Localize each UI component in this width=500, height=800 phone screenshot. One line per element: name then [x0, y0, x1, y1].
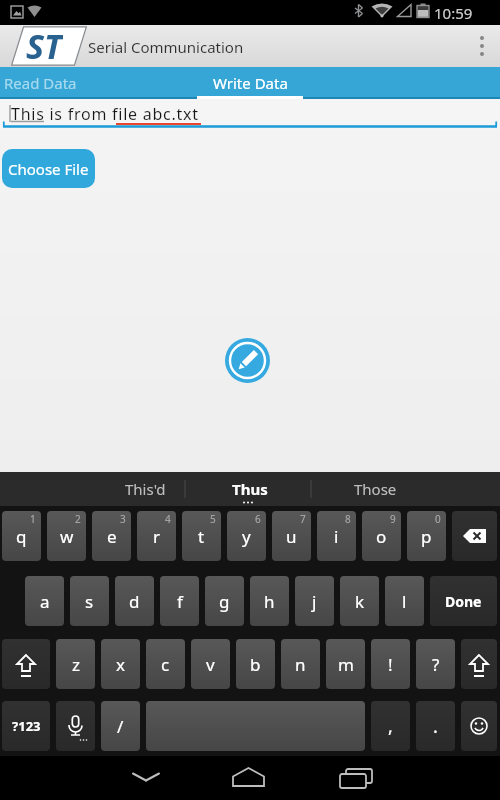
button[interactable]: m [326, 639, 365, 689]
button[interactable]: y [227, 511, 266, 561]
staticText: Done [445, 592, 482, 611]
staticText: 3 [120, 512, 126, 526]
button[interactable] [116, 756, 176, 800]
staticText: j [312, 590, 317, 613]
button[interactable] [327, 756, 387, 800]
button[interactable]: r [137, 511, 176, 561]
button[interactable]: ?123 [2, 701, 50, 751]
staticText: Those [354, 479, 397, 499]
staticText: l [402, 590, 407, 613]
staticText: 2 [75, 512, 81, 526]
button[interactable]: Done [430, 576, 497, 626]
button[interactable]: x [101, 639, 140, 689]
button[interactable]: b [236, 639, 275, 689]
button[interactable]: q [2, 511, 41, 561]
staticText: d [129, 590, 140, 613]
staticText: x [116, 653, 125, 676]
button[interactable]: h [250, 576, 289, 626]
staticText: 7 [300, 512, 306, 526]
staticText: p [421, 525, 432, 548]
button[interactable]: Those [320, 472, 430, 506]
button[interactable]: This'd [100, 472, 190, 506]
button[interactable]: e [92, 511, 131, 561]
button[interactable]: l [385, 576, 424, 626]
staticText: n [295, 653, 306, 676]
staticText: s [85, 590, 94, 613]
button[interactable]: t [182, 511, 221, 561]
button[interactable]: p [407, 511, 446, 561]
button[interactable]: , [371, 701, 410, 751]
staticText: 4 [165, 512, 171, 526]
button[interactable]: c [146, 639, 185, 689]
button[interactable] [2, 639, 50, 689]
button[interactable]: g [205, 576, 244, 626]
button[interactable]: z [56, 639, 95, 689]
button[interactable]: ? [416, 639, 455, 689]
button[interactable] [452, 511, 497, 561]
button[interactable]: n [281, 639, 320, 689]
button[interactable]: a [25, 576, 64, 626]
staticText: z [72, 653, 80, 676]
button[interactable]: Write Data [213, 73, 288, 93]
button[interactable] [461, 639, 497, 689]
staticText: o [376, 525, 387, 548]
button[interactable] [225, 338, 270, 383]
button[interactable]: f [160, 576, 199, 626]
staticText: This is from file abc.txt [11, 103, 199, 125]
staticText: a [40, 590, 50, 613]
staticText: Serial Communication [88, 37, 244, 57]
staticText: ! [388, 653, 393, 676]
staticText: This'd [125, 479, 166, 499]
staticText: w [60, 525, 74, 548]
button[interactable]: i [317, 511, 356, 561]
staticText: c [161, 653, 170, 676]
button[interactable] [146, 701, 365, 751]
button[interactable]: k [340, 576, 379, 626]
button[interactable]: j [295, 576, 334, 626]
staticText: . [433, 714, 438, 739]
staticText: 8 [345, 512, 351, 526]
staticText: ?123 [12, 717, 41, 735]
staticText: m [338, 653, 354, 676]
staticText: ST [26, 23, 63, 65]
staticText: , [388, 714, 393, 739]
staticText: Thus [232, 479, 268, 499]
staticText: 0 [435, 512, 441, 526]
button[interactable]: d [115, 576, 154, 626]
button[interactable]: / [101, 701, 140, 751]
staticText: 6 [255, 512, 261, 526]
button[interactable]: w [47, 511, 86, 561]
staticText: g [219, 590, 230, 613]
staticText: u [286, 525, 297, 548]
staticText: 1 [30, 512, 36, 526]
staticText: 9 [390, 512, 396, 526]
staticText: 10:59 [434, 3, 473, 23]
button[interactable] [0, 99, 500, 129]
staticText: 5 [210, 512, 216, 526]
button[interactable] [464, 25, 500, 67]
staticText: r [153, 525, 161, 548]
staticText: k [355, 590, 365, 613]
staticText: y [242, 525, 251, 548]
staticText: Choose File [8, 159, 89, 179]
button[interactable]: . [416, 701, 455, 751]
button[interactable]: s [70, 576, 109, 626]
button[interactable] [56, 701, 95, 751]
staticText: t [198, 525, 205, 548]
button[interactable]: ! [371, 639, 410, 689]
button[interactable]: v [191, 639, 230, 689]
staticText: Read Data [4, 73, 77, 93]
staticText: / [117, 715, 124, 738]
button[interactable]: Choose File [2, 149, 95, 188]
staticText: f [177, 590, 183, 613]
staticText: v [206, 653, 215, 676]
staticText: ? [432, 653, 440, 676]
button[interactable]: Thus [195, 472, 305, 506]
button[interactable]: u [272, 511, 311, 561]
button[interactable] [461, 701, 497, 751]
staticText: h [264, 590, 275, 613]
staticText: b [250, 653, 261, 676]
button[interactable]: Read Data [0, 73, 73, 93]
button[interactable] [218, 756, 278, 800]
button[interactable]: o [362, 511, 401, 561]
